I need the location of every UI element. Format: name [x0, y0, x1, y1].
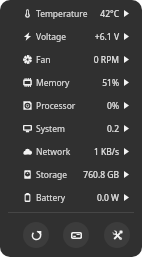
staticText: Network — [36, 146, 71, 158]
staticText: Temperature — [36, 8, 88, 20]
button[interactable]: Tools — [104, 222, 130, 248]
staticText: 0 RPM — [93, 54, 119, 66]
button[interactable]: Temperature — [0, 2, 142, 25]
button[interactable]: System — [0, 117, 142, 140]
staticText: 0.2 — [106, 123, 119, 135]
button[interactable]: Storage — [0, 163, 142, 186]
button[interactable]: Battery — [0, 186, 142, 209]
staticText: +6.1 V — [94, 31, 119, 43]
button[interactable]: Processor — [0, 94, 142, 117]
staticText: System — [36, 123, 65, 135]
button[interactable]: Fan — [0, 48, 142, 71]
button[interactable]: Memory — [0, 71, 142, 94]
staticText: 0.0 W — [96, 192, 119, 204]
staticText: Battery — [36, 192, 66, 204]
staticText: Processor — [36, 100, 76, 112]
staticText: 760.8 GB — [83, 169, 119, 181]
button[interactable]: Network — [0, 140, 142, 163]
staticText: Fan — [36, 54, 51, 66]
staticText: Voltage — [36, 31, 67, 43]
staticText: 1 KB/s — [93, 146, 119, 158]
staticText: Memory — [36, 77, 70, 89]
staticText: Storage — [36, 169, 68, 181]
staticText: 42°C — [100, 8, 119, 20]
button[interactable]: Voltage — [0, 25, 142, 48]
button[interactable]: Monitor — [63, 222, 89, 248]
staticText: 51% — [102, 77, 119, 89]
button[interactable]: Refresh — [23, 222, 49, 248]
staticText: 0% — [107, 100, 119, 112]
